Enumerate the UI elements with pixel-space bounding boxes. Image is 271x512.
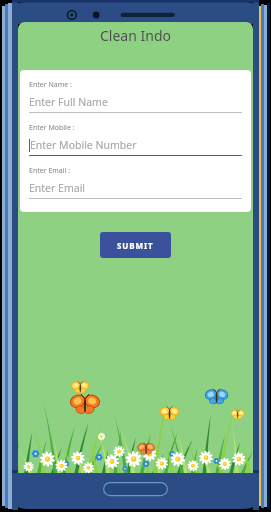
button[interactable]: Enter Full Name xyxy=(29,95,242,113)
staticText: Enter Mobile : xyxy=(29,123,75,133)
staticText: Clean Indo xyxy=(100,26,171,45)
staticText: Enter Email xyxy=(29,181,86,195)
staticText: Enter Email : xyxy=(29,166,71,176)
staticText: SUBMIT xyxy=(117,240,154,251)
staticText: Enter Full Name xyxy=(29,95,108,109)
button[interactable]: Enter Mobile Number xyxy=(29,138,242,156)
staticText: Enter Mobile Number xyxy=(30,138,137,152)
button[interactable]: SUBMIT xyxy=(100,232,171,258)
button[interactable]: Enter Email xyxy=(29,181,242,199)
staticText: Enter Name : xyxy=(29,80,72,90)
